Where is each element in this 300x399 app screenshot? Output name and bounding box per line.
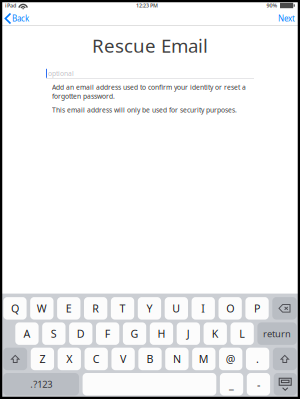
- button[interactable]: return: [257, 322, 297, 345]
- staticText: S: [51, 327, 57, 341]
- staticText: N: [173, 352, 181, 366]
- staticText: Y: [146, 301, 152, 315]
- staticText: return: [263, 327, 291, 340]
- staticText: G: [131, 327, 139, 341]
- button[interactable]: W: [30, 297, 53, 320]
- button[interactable]: Shift: [273, 348, 297, 370]
- staticText: Next: [278, 13, 295, 24]
- staticText: O: [226, 301, 234, 315]
- staticText: This email address will only be used for…: [52, 105, 237, 114]
- staticText: M: [199, 352, 209, 366]
- staticText: X: [66, 352, 72, 366]
- button[interactable]: Y: [138, 297, 161, 320]
- button[interactable]: C: [84, 348, 108, 370]
- staticText: -: [257, 377, 260, 391]
- staticText: A: [23, 327, 30, 341]
- button[interactable]: O: [218, 297, 242, 320]
- button[interactable]: G: [123, 322, 146, 345]
- button[interactable]: .: [246, 348, 269, 370]
- staticText: 12:23 PM: [136, 2, 158, 9]
- button[interactable]: [83, 373, 216, 395]
- button[interactable]: _: [220, 373, 243, 395]
- button[interactable]: .?123: [3, 373, 79, 395]
- button[interactable]: Back: [0, 11, 34, 26]
- button[interactable]: M: [192, 348, 215, 370]
- button[interactable]: R: [84, 297, 107, 320]
- button[interactable]: K: [204, 322, 227, 345]
- button[interactable]: Hide Keyboard: [274, 373, 297, 395]
- staticText: F: [105, 327, 111, 341]
- staticText: V: [120, 352, 126, 366]
- staticText: _: [229, 377, 234, 391]
- staticText: Back: [12, 13, 29, 24]
- staticText: K: [212, 327, 219, 341]
- button[interactable]: N: [165, 348, 188, 370]
- button[interactable]: Q: [3, 297, 27, 320]
- staticText: Rescue Email: [92, 33, 208, 58]
- staticText: U: [172, 301, 180, 315]
- button[interactable]: U: [165, 297, 188, 320]
- button[interactable]: L: [230, 322, 254, 345]
- button[interactable]: X: [58, 348, 81, 370]
- staticText: C: [93, 352, 100, 366]
- staticText: I: [201, 301, 205, 315]
- button[interactable]: P: [245, 297, 269, 320]
- staticText: @: [226, 352, 236, 366]
- staticText: Q: [11, 301, 19, 315]
- button[interactable]: D: [69, 322, 92, 345]
- button[interactable]: S: [42, 322, 65, 345]
- button[interactable]: Z: [31, 348, 54, 370]
- button[interactable]: @: [219, 348, 242, 370]
- staticText: Add an email address used to confirm you…: [52, 83, 246, 100]
- button[interactable]: Delete: [272, 297, 297, 320]
- staticText: 90%: [266, 2, 277, 9]
- button[interactable]: Next: [273, 11, 300, 26]
- staticText: optional: [48, 69, 74, 78]
- button[interactable]: I: [192, 297, 215, 320]
- button[interactable]: E: [57, 297, 80, 320]
- button[interactable]: A: [15, 322, 39, 345]
- staticText: H: [157, 327, 165, 341]
- staticText: D: [77, 327, 85, 341]
- staticText: .: [256, 352, 259, 366]
- staticText: E: [66, 301, 72, 315]
- button[interactable]: F: [96, 322, 119, 345]
- staticText: Z: [39, 352, 45, 366]
- staticText: R: [92, 301, 99, 315]
- staticText: J: [187, 327, 190, 341]
- staticText: P: [254, 301, 260, 315]
- button[interactable]: B: [138, 348, 162, 370]
- button[interactable]: V: [111, 348, 135, 370]
- button[interactable]: Shift: [3, 348, 27, 370]
- staticText: B: [146, 352, 153, 366]
- staticText: W: [37, 301, 47, 315]
- button[interactable]: H: [150, 322, 173, 345]
- button[interactable]: T: [111, 297, 134, 320]
- button[interactable]: -: [247, 373, 270, 395]
- staticText: T: [119, 301, 125, 315]
- staticText: iPad: [5, 2, 16, 9]
- staticText: .?123: [30, 378, 52, 390]
- button[interactable]: J: [177, 322, 200, 345]
- staticText: L: [239, 327, 245, 341]
